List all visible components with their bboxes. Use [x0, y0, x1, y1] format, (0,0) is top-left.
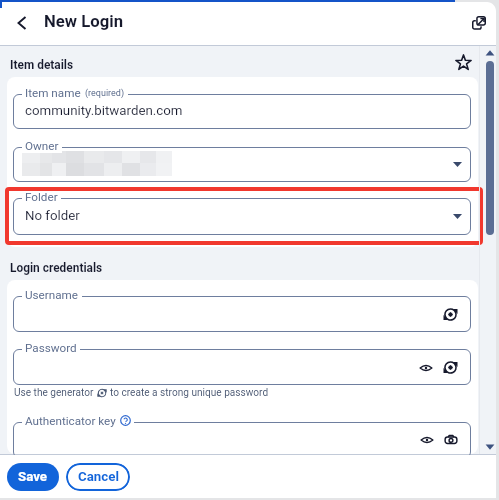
button[interactable]: Generate password	[443, 307, 458, 322]
staticText: Login credentials	[10, 261, 103, 275]
button[interactable]: Expand	[453, 160, 462, 169]
staticText: Authenticator key	[25, 414, 116, 428]
button[interactable]: Favorite	[455, 54, 472, 71]
staticText: Item name	[25, 86, 81, 100]
button[interactable]: Toggle visibility	[13, 422, 471, 458]
button[interactable]: Generate password	[13, 296, 471, 332]
staticText: New Login	[44, 12, 124, 32]
staticText: Username	[25, 288, 79, 302]
staticText: No folder	[25, 208, 80, 224]
staticText: community.bitwarden.com	[25, 103, 183, 119]
staticText: Password	[25, 341, 77, 355]
button[interactable]: No folder	[13, 198, 471, 235]
button[interactable]: community.bitwarden.com	[13, 94, 471, 129]
staticText: to create a strong unique password	[110, 387, 269, 399]
button[interactable]: Back	[11, 13, 33, 35]
staticText: Owner	[25, 139, 59, 153]
staticText: Use the generator	[14, 387, 94, 399]
button[interactable]: Scan QR code	[444, 433, 458, 447]
button[interactable]: Expand	[453, 212, 462, 221]
staticText: Save	[18, 469, 48, 485]
button[interactable]: Open in new window	[472, 16, 486, 30]
button[interactable]: Cancel	[66, 463, 130, 491]
staticText: Folder	[25, 190, 58, 204]
staticText: Cancel	[78, 469, 119, 485]
button[interactable]: Toggle visibility	[420, 433, 434, 447]
staticText: Item details	[10, 58, 74, 72]
button[interactable]: Expand	[13, 147, 471, 182]
button[interactable]: Help	[120, 415, 131, 426]
button[interactable]: Toggle visibility	[419, 361, 433, 375]
button[interactable]: Toggle visibility	[13, 349, 471, 385]
button[interactable]: Save	[7, 463, 59, 491]
staticText: (required)	[85, 88, 125, 99]
button[interactable]: Generate password	[443, 360, 458, 375]
